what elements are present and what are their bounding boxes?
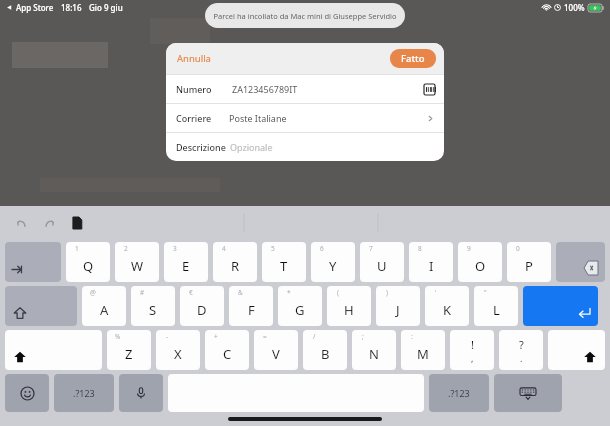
staticText: ? bbox=[519, 337, 524, 352]
button[interactable]: 9 bbox=[458, 242, 502, 282]
staticText: .?123 bbox=[448, 387, 470, 399]
staticText: U bbox=[377, 257, 387, 275]
button[interactable]: Maiuscole bbox=[5, 330, 102, 370]
button[interactable]: Dettatura bbox=[119, 374, 163, 412]
button[interactable]: 5 bbox=[262, 242, 306, 282]
staticText: Annulla bbox=[177, 52, 211, 65]
staticText: B bbox=[321, 345, 330, 363]
staticText: 100% bbox=[564, 2, 585, 13]
button[interactable]: % bbox=[107, 330, 151, 370]
button[interactable]: Elimina bbox=[556, 242, 605, 282]
staticText: A bbox=[100, 301, 109, 319]
staticText: Gio 9 giu bbox=[89, 2, 123, 13]
button[interactable]: : bbox=[401, 330, 445, 370]
staticText: T bbox=[280, 257, 288, 275]
button[interactable]: ) bbox=[376, 286, 420, 326]
button[interactable]: Annulla bbox=[10, 212, 32, 234]
button[interactable]: @ bbox=[82, 286, 126, 326]
staticText: J bbox=[396, 301, 400, 319]
staticText: Opzionale bbox=[230, 141, 273, 153]
button[interactable]: Tab bbox=[5, 242, 61, 282]
button[interactable]: .?123 bbox=[429, 374, 489, 412]
button[interactable]: Annulla bbox=[175, 48, 213, 69]
button[interactable]: / bbox=[303, 330, 347, 370]
button[interactable]: 8 bbox=[409, 242, 453, 282]
staticText: P bbox=[525, 257, 533, 275]
staticText: L bbox=[493, 301, 500, 319]
button[interactable]: Maiuscole bbox=[548, 330, 605, 370]
staticText: 18:16 bbox=[61, 2, 82, 13]
staticText: - bbox=[166, 332, 169, 341]
staticText: Numero bbox=[176, 83, 212, 95]
button[interactable]: Emoji bbox=[5, 374, 49, 412]
button[interactable]: & bbox=[229, 286, 273, 326]
staticText: # bbox=[140, 288, 145, 297]
button[interactable]: .?123 bbox=[54, 374, 114, 412]
staticText: % bbox=[115, 332, 121, 341]
button[interactable]: = bbox=[254, 330, 298, 370]
button[interactable]: Ripristina bbox=[38, 212, 60, 234]
button[interactable]: ! bbox=[450, 330, 494, 370]
staticText: M bbox=[417, 345, 429, 363]
button[interactable]: Fatto bbox=[390, 49, 436, 68]
button[interactable]: Invio bbox=[523, 286, 598, 326]
button[interactable]: Maiuscole bbox=[5, 286, 77, 326]
other: Scansiona codice a barre bbox=[424, 84, 435, 95]
staticText: N bbox=[369, 345, 379, 363]
button[interactable]: 3 bbox=[164, 242, 208, 282]
button[interactable]: ? bbox=[499, 330, 543, 370]
button[interactable]: Corriere bbox=[166, 104, 444, 132]
staticText: 7 bbox=[369, 244, 373, 253]
staticText: 8 bbox=[418, 244, 422, 253]
staticText: ( bbox=[337, 288, 339, 297]
staticText: App Store bbox=[16, 2, 54, 13]
staticText: 6 bbox=[320, 244, 324, 253]
button[interactable]: Numero bbox=[166, 75, 444, 103]
button[interactable]: # bbox=[131, 286, 175, 326]
button[interactable]: 0 bbox=[507, 242, 551, 282]
button[interactable]: 2 bbox=[115, 242, 159, 282]
staticText: € bbox=[189, 288, 193, 297]
staticText: V bbox=[272, 345, 280, 363]
button[interactable]: 7 bbox=[360, 242, 404, 282]
staticText: ' bbox=[435, 288, 437, 297]
staticText: / bbox=[313, 332, 316, 341]
staticText: E bbox=[182, 257, 190, 275]
staticText: Poste Italiane bbox=[229, 112, 287, 124]
staticText: 1 bbox=[75, 244, 79, 253]
staticText: ; bbox=[362, 332, 364, 341]
button[interactable]: Descrizione bbox=[166, 133, 444, 161]
button[interactable]: 6 bbox=[311, 242, 355, 282]
staticText: Y bbox=[329, 257, 337, 275]
button[interactable]: + bbox=[205, 330, 249, 370]
staticText: 2 bbox=[124, 244, 128, 253]
button[interactable]: ' bbox=[425, 286, 469, 326]
staticText: Fatto bbox=[401, 52, 425, 65]
staticText: & bbox=[238, 288, 243, 297]
button[interactable]: ( bbox=[327, 286, 371, 326]
button[interactable]: Nascondi tastiera bbox=[494, 374, 562, 412]
staticText: Parcel ha incollato da Mac mini di Giuse… bbox=[213, 11, 397, 21]
button[interactable]: - bbox=[156, 330, 200, 370]
staticText: ! bbox=[471, 337, 474, 352]
button[interactable]: * bbox=[278, 286, 322, 326]
staticText: 3 bbox=[173, 244, 177, 253]
button[interactable]: 1 bbox=[66, 242, 110, 282]
button[interactable]: 4 bbox=[213, 242, 257, 282]
staticText: . bbox=[520, 352, 523, 364]
staticText: .?123 bbox=[73, 387, 95, 399]
staticText: D bbox=[197, 301, 207, 319]
button[interactable]: Incolla bbox=[66, 212, 88, 234]
staticText: O bbox=[475, 257, 486, 275]
button[interactable]: ; bbox=[352, 330, 396, 370]
staticText: Descrizione bbox=[176, 141, 226, 153]
staticText: ) bbox=[386, 288, 388, 297]
staticText: @ bbox=[90, 288, 96, 297]
staticText: X bbox=[174, 345, 182, 363]
button[interactable]: " bbox=[474, 286, 518, 326]
staticText: Corriere bbox=[176, 112, 212, 124]
button[interactable]: € bbox=[180, 286, 224, 326]
staticText: " bbox=[484, 288, 487, 297]
staticText: S bbox=[149, 301, 157, 319]
